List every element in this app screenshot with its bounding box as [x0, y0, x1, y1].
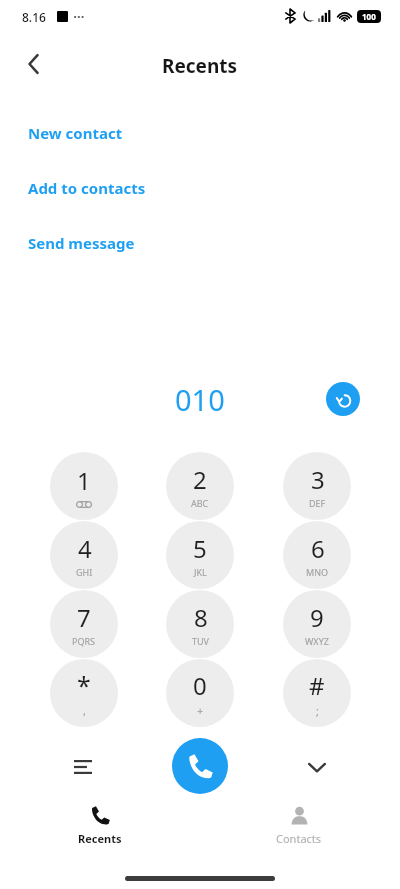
- staticText: 1: [77, 464, 91, 497]
- staticText: 8: [194, 601, 208, 634]
- staticText: 100: [362, 11, 376, 22]
- staticText: New contact: [28, 123, 123, 143]
- staticText: *: [77, 668, 91, 702]
- button[interactable]: 0: [166, 659, 234, 727]
- staticText: Add to contacts: [28, 178, 146, 198]
- staticText: PQRS: [72, 635, 96, 647]
- staticText: TUV: [192, 635, 209, 647]
- button[interactable]: 8: [166, 590, 234, 658]
- button[interactable]: 7: [50, 590, 118, 658]
- button[interactable]: 6: [283, 521, 351, 589]
- button[interactable]: 5: [166, 521, 234, 589]
- staticText: 0: [193, 669, 207, 702]
- button[interactable]: 1: [50, 452, 118, 520]
- staticText: ABC: [191, 497, 209, 509]
- staticText: Send message: [28, 233, 135, 253]
- staticText: ,: [83, 703, 86, 718]
- staticText: GHI: [76, 566, 93, 578]
- staticText: MNO: [306, 566, 329, 578]
- staticText: 010: [175, 380, 225, 419]
- button[interactable]: Hide keypad: [296, 746, 338, 788]
- button[interactable]: *: [50, 659, 118, 727]
- staticText: WXYZ: [305, 635, 329, 647]
- staticText: 6: [311, 532, 325, 565]
- button[interactable]: Contacts: [254, 806, 344, 854]
- button[interactable]: Undo: [326, 382, 360, 416]
- staticText: 4: [78, 532, 92, 565]
- staticText: 8.16: [22, 9, 46, 25]
- button[interactable]: 3: [283, 452, 351, 520]
- button[interactable]: New contact: [16, 121, 135, 145]
- staticText: +: [197, 703, 204, 718]
- staticText: Recents: [162, 53, 238, 79]
- staticText: 3: [311, 463, 325, 496]
- button[interactable]: 4: [50, 521, 118, 589]
- staticText: 7: [77, 601, 91, 634]
- button[interactable]: 9: [283, 590, 351, 658]
- staticText: ;: [316, 703, 319, 718]
- staticText: Contacts: [276, 831, 322, 846]
- staticText: 5: [193, 532, 207, 565]
- staticText: Recents: [78, 831, 122, 846]
- button[interactable]: 2: [166, 452, 234, 520]
- staticText: 9: [310, 601, 324, 634]
- button[interactable]: Send message: [16, 231, 147, 255]
- button[interactable]: Call: [172, 738, 228, 794]
- button[interactable]: Recents: [55, 806, 145, 854]
- button[interactable]: Add to contacts: [16, 176, 158, 200]
- button[interactable]: More options: [62, 746, 104, 788]
- staticText: DEF: [309, 497, 326, 509]
- staticText: JKL: [194, 566, 207, 578]
- button[interactable]: Back: [14, 44, 54, 84]
- staticText: 2: [193, 463, 207, 496]
- button[interactable]: #: [283, 659, 351, 727]
- staticText: #: [309, 669, 325, 702]
